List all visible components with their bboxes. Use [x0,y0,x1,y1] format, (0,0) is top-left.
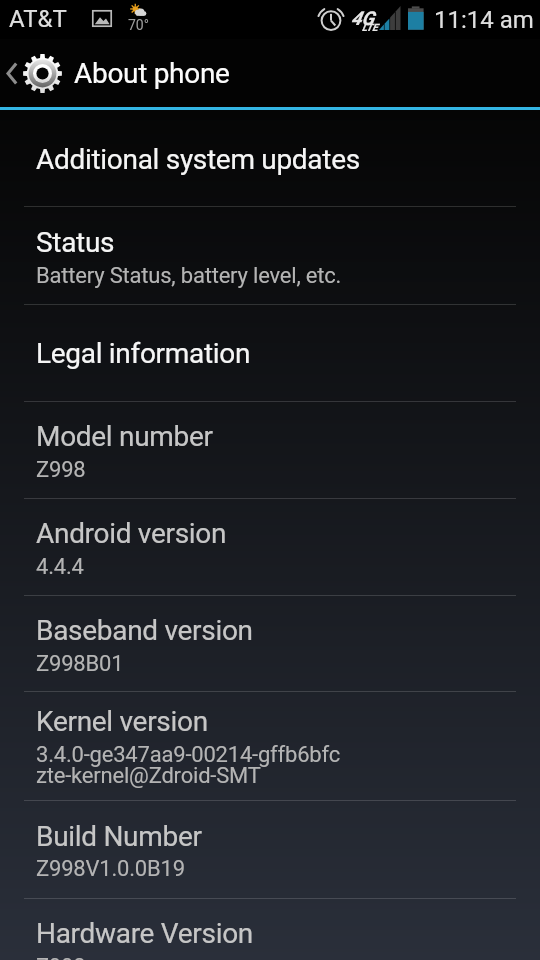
staticText: 4G [351,7,375,29]
staticText: Model number [36,420,213,453]
other: Battery [408,6,425,31]
staticText: Legal information [36,337,251,370]
button[interactable]: Navigate up, About phone [0,39,540,107]
staticText: Z998 [36,457,86,483]
button[interactable]: Kernel version [0,692,540,800]
staticText: About phone [74,57,230,90]
button[interactable]: Status [0,207,540,304]
button[interactable]: Model number [0,402,540,498]
staticText: Z998B01 [36,651,124,677]
staticText: 4.4.4 [36,554,84,580]
staticText: AT&T [9,5,67,33]
button[interactable]: Baseband version [0,596,540,691]
staticText: Hardware Version [36,917,253,950]
staticText: Baseband version [36,614,253,647]
button[interactable]: Android version [0,499,540,595]
button[interactable]: Build Number [0,801,540,898]
staticText: Battery Status, battery level, etc. [36,263,342,289]
staticText: Status [36,226,115,259]
staticText: zte-kernel@Zdroid-SMT [36,763,261,789]
button[interactable]: Additional system updates [0,110,540,206]
staticText: Z998V1.0.0B19 [36,856,185,882]
button[interactable]: Legal information [0,305,540,401]
staticText: Z998 [36,954,86,960]
staticText: LTE [362,22,378,34]
staticText: Android version [36,517,227,550]
staticText: Build Number [36,820,202,853]
staticText: 11:14 am [434,6,534,34]
staticText: 70° [128,17,149,33]
staticText: Kernel version [36,705,208,738]
other: Signal strength [379,6,401,30]
staticText: Additional system updates [36,143,360,176]
other: Alarm set [318,6,344,32]
staticText: 3.4.0-ge347aa9-00214-gffb6bfc [36,742,340,768]
button[interactable]: Hardware Version [0,899,540,960]
